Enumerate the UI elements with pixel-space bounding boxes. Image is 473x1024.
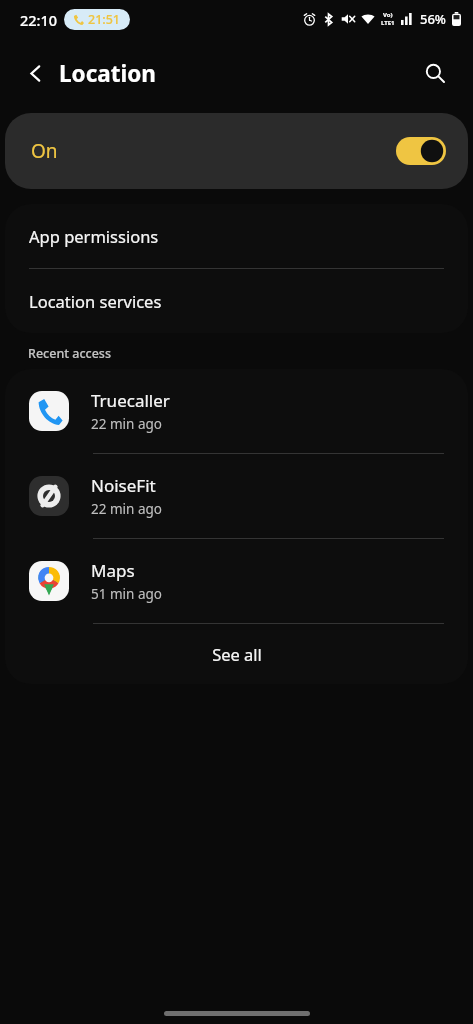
staticText: LTE1	[381, 19, 395, 27]
staticText: Truecaller	[91, 389, 170, 412]
staticText: Location	[59, 58, 156, 89]
button[interactable]: See all	[5, 624, 468, 684]
staticText: NoiseFit	[91, 474, 156, 497]
staticText: On	[31, 138, 58, 164]
staticText: 22 min ago	[91, 415, 162, 433]
staticText: App permissions	[29, 225, 159, 247]
staticText: 21:51	[88, 11, 121, 28]
button[interactable]: NoiseFit	[5, 454, 468, 538]
staticText: Recent access	[28, 345, 112, 362]
button[interactable]: Truecaller	[5, 369, 468, 453]
button[interactable]: Maps	[5, 539, 468, 623]
staticText: Location services	[29, 290, 162, 312]
button[interactable]: Back	[14, 52, 56, 94]
button[interactable]: Search	[413, 51, 457, 95]
staticText: 56%	[420, 10, 446, 28]
staticText: 51 min ago	[91, 585, 162, 603]
staticText: 22 min ago	[91, 500, 162, 518]
staticText: Maps	[91, 559, 135, 582]
staticText: Vo)	[383, 11, 393, 19]
staticText: See all	[212, 643, 262, 665]
button[interactable]: App permissions	[5, 204, 468, 268]
button[interactable]: Location services	[5, 269, 468, 333]
staticText: 22:10	[20, 10, 58, 30]
button[interactable]: On	[5, 113, 468, 189]
